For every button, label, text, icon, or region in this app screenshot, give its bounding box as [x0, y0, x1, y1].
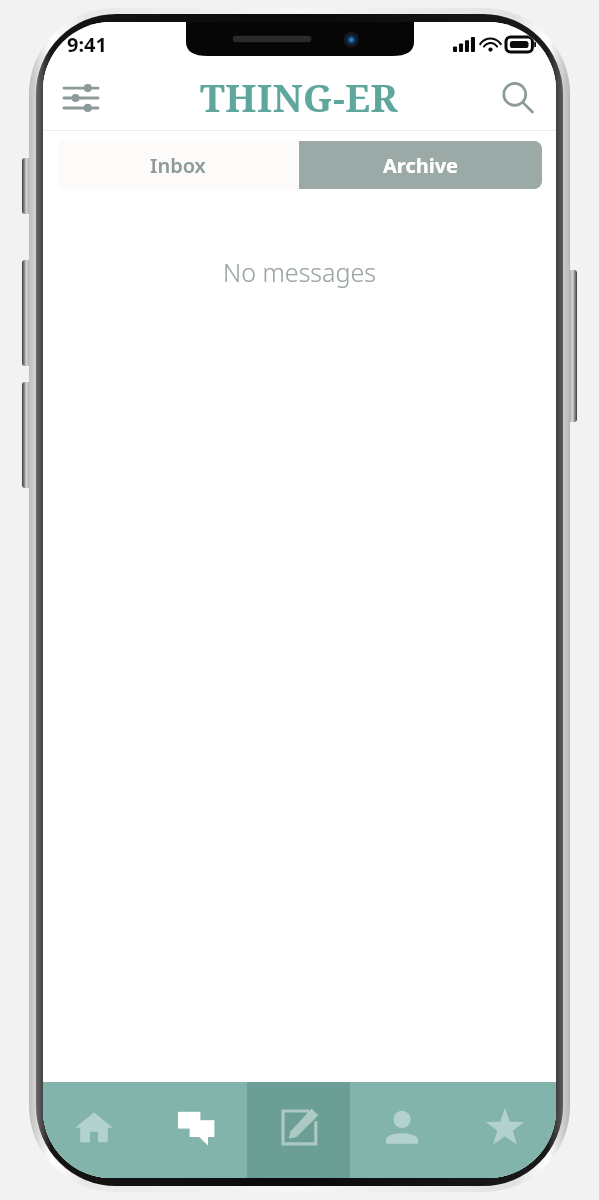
button[interactable]: Messages — [145, 1082, 247, 1178]
button[interactable]: Filters — [53, 70, 109, 126]
button[interactable]: Profile — [350, 1082, 453, 1178]
button[interactable]: Compose — [247, 1082, 350, 1178]
button[interactable]: Favorites — [453, 1082, 556, 1178]
button[interactable]: Search — [490, 70, 546, 126]
button[interactable]: Archive — [299, 141, 542, 189]
staticText: Archive — [383, 152, 459, 179]
button[interactable]: Home — [43, 1082, 145, 1178]
staticText: 9:41 — [67, 31, 107, 58]
staticText: Inbox — [150, 152, 206, 179]
staticText: THING-ER — [200, 71, 399, 123]
button[interactable]: Inbox — [57, 141, 299, 189]
staticText: No messages — [223, 255, 376, 289]
